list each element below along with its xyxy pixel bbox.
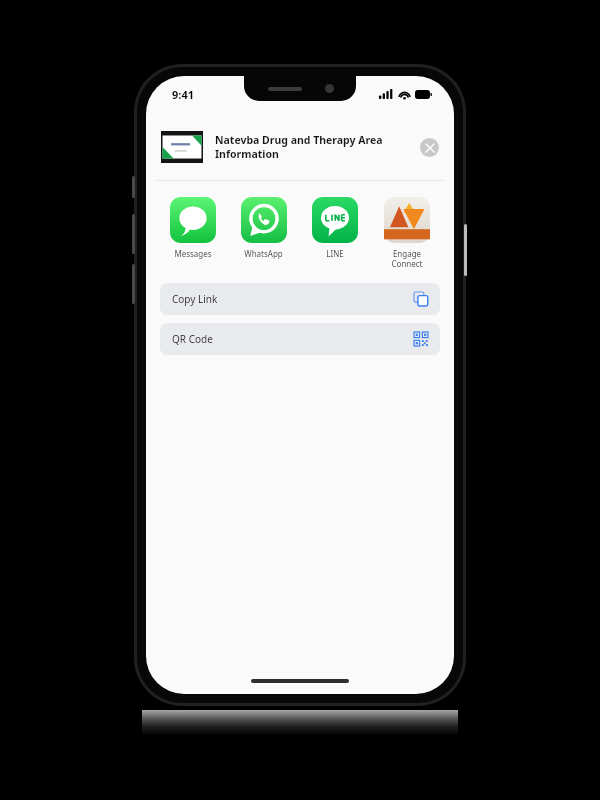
other: QR Code — [414, 332, 428, 346]
button[interactable]: LINE — [306, 197, 364, 259]
staticText: LINE — [326, 248, 344, 259]
staticText: 9:41 — [172, 87, 194, 102]
staticText: Natevba Drug and Therapy Area Informatio… — [215, 133, 412, 161]
button[interactable]: Close — [420, 138, 439, 157]
button[interactable]: WhatsApp — [235, 197, 292, 259]
button[interactable]: QR Code — [160, 323, 440, 355]
staticText: QR Code — [172, 332, 414, 346]
staticText: Messages — [174, 248, 212, 259]
staticText: Copy Link — [172, 292, 414, 306]
button[interactable]: Engage Connect — [378, 197, 436, 269]
button[interactable]: Copy Link — [160, 283, 440, 315]
button[interactable]: Messages — [164, 197, 221, 259]
staticText: WhatsApp — [244, 248, 283, 259]
other: Copy Link — [414, 292, 428, 306]
staticText: Engage Connect — [378, 248, 436, 269]
